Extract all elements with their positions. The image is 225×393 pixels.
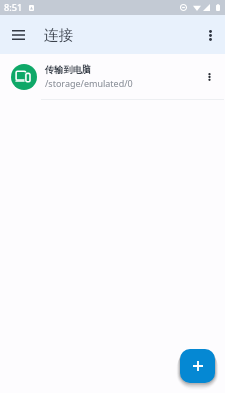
button[interactable]: Item options: [199, 67, 219, 87]
button[interactable]: Add: [180, 349, 215, 383]
staticText: 8:51: [4, 1, 23, 14]
button[interactable]: More options: [198, 23, 222, 47]
staticText: /storage/emulated/0: [45, 77, 133, 89]
staticText: 传输到电脑: [45, 64, 91, 76]
staticText: 连接: [44, 26, 73, 44]
button[interactable]: 传输到电脑: [0, 54, 225, 100]
button[interactable]: Open navigation drawer: [6, 23, 30, 47]
